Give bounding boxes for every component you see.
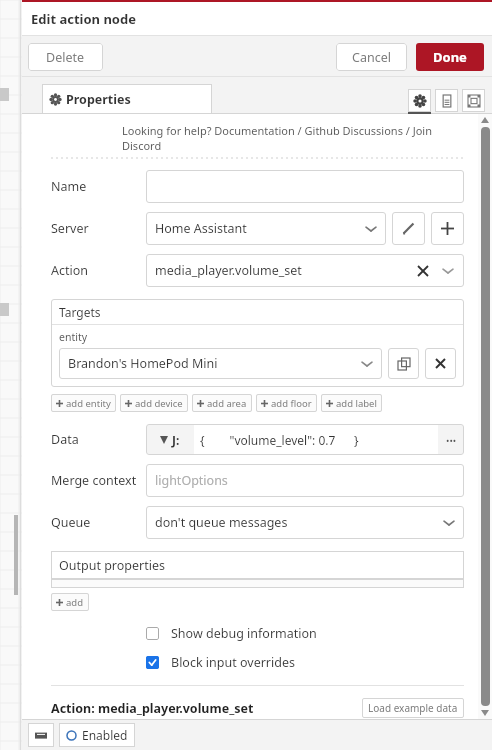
button[interactable]: J: bbox=[146, 424, 464, 455]
button[interactable] bbox=[481, 127, 490, 706]
staticText: { "volume_level": 0.7 } bbox=[200, 432, 359, 448]
button[interactable] bbox=[146, 170, 464, 203]
button[interactable]: Block input overrides bbox=[146, 654, 492, 671]
staticText: lightOptions bbox=[155, 472, 228, 489]
button[interactable]: add label bbox=[321, 394, 382, 412]
staticText: Action bbox=[51, 262, 89, 279]
staticText: Edit action node bbox=[31, 10, 136, 28]
button[interactable]: media_player.volume_set bbox=[146, 254, 464, 287]
button[interactable]: add area bbox=[192, 394, 252, 412]
button[interactable]: Home Assistant bbox=[146, 212, 386, 245]
button[interactable]: lightOptions bbox=[146, 464, 464, 497]
staticText: Cancel bbox=[352, 49, 391, 66]
staticText: Properties bbox=[66, 91, 131, 108]
button[interactable]: Delete bbox=[28, 43, 103, 71]
button[interactable]: Show debug information bbox=[146, 625, 492, 642]
staticText: Block input overrides bbox=[171, 654, 295, 671]
staticText: Server bbox=[51, 220, 89, 237]
button[interactable]: Node info bbox=[28, 723, 54, 747]
staticText: Brandon's HomePod Mini bbox=[68, 355, 218, 372]
button[interactable]: add device bbox=[120, 394, 188, 412]
button[interactable]: Tool bbox=[462, 89, 485, 112]
staticText: add device bbox=[135, 397, 183, 410]
staticText: Looking for help? Documentation / Github… bbox=[122, 123, 462, 153]
staticText: J: bbox=[172, 432, 180, 448]
staticText: Done bbox=[433, 48, 467, 66]
staticText: Data bbox=[51, 431, 79, 448]
button[interactable]: Remove bbox=[425, 348, 456, 379]
staticText: entity bbox=[59, 330, 88, 344]
staticText: Name bbox=[51, 178, 87, 195]
staticText: Merge context bbox=[51, 472, 137, 489]
staticText: Load example data bbox=[368, 701, 458, 715]
staticText: Delete bbox=[46, 49, 85, 66]
button[interactable]: Done bbox=[416, 43, 484, 71]
button[interactable]: Tool bbox=[435, 89, 458, 112]
staticText: add bbox=[66, 596, 84, 609]
staticText: add floor bbox=[271, 397, 312, 410]
button[interactable]: Properties bbox=[42, 84, 212, 114]
staticText: Enabled bbox=[82, 727, 128, 743]
staticText: Home Assistant bbox=[155, 220, 247, 237]
staticText: add area bbox=[207, 397, 247, 410]
button[interactable]: Tool bbox=[408, 89, 431, 112]
button[interactable]: add bbox=[51, 593, 89, 611]
button[interactable]: Add bbox=[431, 212, 464, 245]
staticText: add entity bbox=[66, 397, 111, 410]
staticText: ••• bbox=[446, 434, 457, 446]
button[interactable]: Brandon's HomePod Mini bbox=[59, 348, 382, 379]
button[interactable]: add floor bbox=[256, 394, 317, 412]
button[interactable]: add entity bbox=[51, 394, 116, 412]
staticText: Show debug information bbox=[171, 625, 317, 642]
button[interactable]: Copy bbox=[388, 348, 419, 379]
button[interactable]: Load example data bbox=[362, 698, 464, 718]
staticText: don't queue messages bbox=[155, 514, 288, 531]
button[interactable]: Cancel bbox=[336, 43, 407, 71]
button[interactable]: Enabled bbox=[59, 723, 135, 747]
staticText: Targets bbox=[59, 304, 101, 320]
staticText: Action: media_player.volume_set bbox=[51, 700, 254, 717]
staticText: Queue bbox=[51, 514, 91, 531]
staticText: add label bbox=[336, 397, 377, 410]
button[interactable]: don't queue messages bbox=[146, 506, 464, 539]
button[interactable]: Edit bbox=[392, 212, 425, 245]
staticText: Output properties bbox=[59, 557, 166, 574]
staticText: media_player.volume_set bbox=[155, 262, 302, 279]
